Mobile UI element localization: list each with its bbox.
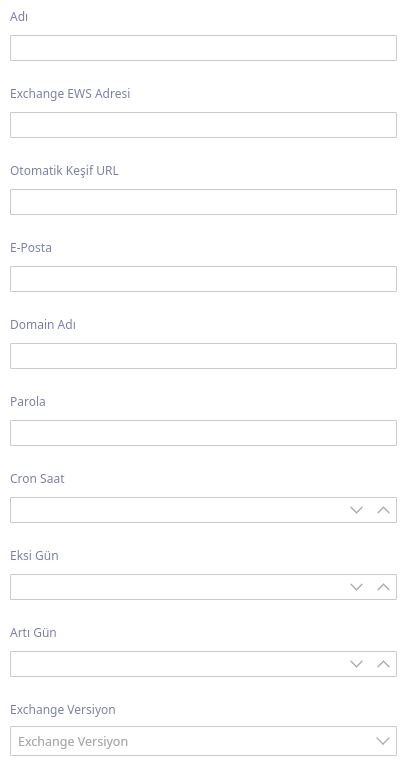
staticText: Exchange Versiyon xyxy=(18,733,129,750)
staticText: Parola xyxy=(10,393,46,409)
button[interactable]: E-Posta xyxy=(10,266,397,292)
staticText: Artı Gün xyxy=(10,624,57,640)
button[interactable]: Artı Gün xyxy=(10,651,397,677)
button[interactable]: Exchange EWS Adresi xyxy=(10,112,397,138)
button[interactable]: Decrease Artı Gün xyxy=(349,658,364,670)
button[interactable]: Decrease Eksi Gün xyxy=(349,581,364,593)
button[interactable]: Decrease Cron Saat xyxy=(349,504,364,516)
staticText: Eksi Gün xyxy=(10,547,59,563)
staticText: Otomatik Keşif URL xyxy=(10,162,119,178)
staticText: Exchange EWS Adresi xyxy=(10,85,131,101)
button[interactable]: Increase Artı Gün xyxy=(376,658,391,670)
button[interactable]: Eksi Gün xyxy=(10,574,397,600)
button[interactable]: Domain Adı xyxy=(10,343,397,369)
button[interactable]: Otomatik Keşif URL xyxy=(10,189,397,215)
staticText: Domain Adı xyxy=(10,316,76,332)
button[interactable]: Increase Cron Saat xyxy=(376,504,391,516)
button[interactable]: Exchange Versiyon xyxy=(10,726,397,756)
staticText: Exchange Versiyon xyxy=(10,701,116,717)
button[interactable]: Cron Saat xyxy=(10,497,397,523)
button[interactable]: Increase Eksi Gün xyxy=(376,581,391,593)
staticText: Cron Saat xyxy=(10,470,65,486)
button[interactable]: Parola xyxy=(10,420,397,446)
staticText: Adı xyxy=(10,8,29,24)
staticText: E-Posta xyxy=(10,239,52,255)
button[interactable]: Adı xyxy=(10,35,397,61)
